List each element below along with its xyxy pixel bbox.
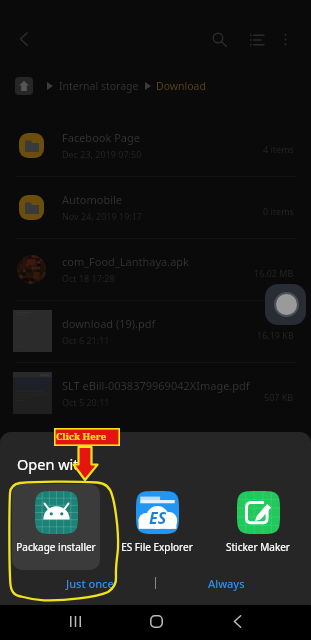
staticText: ES [149,507,167,529]
staticText: Oct 5 20:11 [62,396,110,408]
staticText: 16.02 MB [254,267,294,279]
staticText: Download [156,79,206,93]
button[interactable]: Back [8,23,40,55]
staticText: Internal storage [59,79,139,93]
button[interactable]: Change view [241,24,272,55]
button[interactable]: Automobile [0,176,311,238]
button[interactable]: Sticker Maker [214,484,302,570]
button[interactable]: Just once [36,571,144,595]
button[interactable]: Always [172,571,280,595]
button[interactable]: Search [204,24,235,55]
staticText: Just once [66,576,114,591]
button[interactable]: download (19).pdf [0,300,311,362]
button[interactable]: SLT eBill-0038379969042XImage.pdf [0,362,311,424]
staticText: Package installer [16,540,96,554]
button[interactable]: ES [113,484,201,570]
staticText: 0 items [263,205,294,217]
staticText: Facebook Page [62,130,140,145]
staticText: 507 KB [264,391,294,403]
staticText: Open with [17,454,88,474]
staticText: download (19).pdf [62,316,156,331]
staticText: Nov 24, 2019 19:17 [62,210,143,222]
button[interactable]: com_Food_Lanthaya.apk [0,238,311,300]
staticText: Click Here [56,430,107,443]
button[interactable]: Facebook Page [0,114,311,176]
button[interactable]: Recents [59,605,91,637]
staticText: Automobile [62,192,123,207]
staticText: 4 items [263,143,294,155]
button[interactable]: Back [221,605,253,637]
staticText: Oct 18 17:28 [62,272,115,284]
staticText: com_Food_Lanthaya.apk [62,254,189,269]
staticText: Dec 23, 2019 07:50 [62,148,142,160]
staticText: SLT eBill-0038379969042XImage.pdf [62,378,250,393]
staticText: Oct 6 21:11 [62,334,110,346]
staticText: Always [208,576,245,591]
button[interactable]: Home [140,605,172,637]
button[interactable]: Package installer [12,484,100,570]
staticText: Sticker Maker [226,540,290,554]
staticText: 16.19 KB [257,329,294,341]
staticText: ES File Explorer [121,540,193,554]
